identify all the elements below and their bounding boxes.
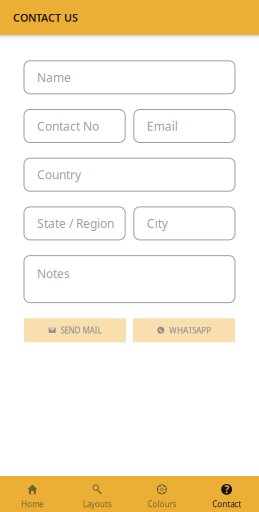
staticText: Home bbox=[21, 499, 44, 509]
staticText: Contact No bbox=[37, 118, 99, 134]
button[interactable]: Colours bbox=[129, 476, 194, 512]
staticText: Name bbox=[37, 69, 71, 85]
staticText: Email bbox=[147, 118, 178, 134]
staticText: City bbox=[147, 215, 168, 231]
staticText: Notes bbox=[37, 266, 70, 281]
staticText: State / Region bbox=[37, 215, 114, 231]
staticText: Contact bbox=[212, 499, 241, 509]
button[interactable]: WHATSAPP bbox=[133, 318, 235, 342]
staticText: Layouts bbox=[83, 499, 112, 509]
staticText: SEND MAIL bbox=[60, 325, 101, 336]
staticText: Country bbox=[37, 167, 81, 183]
staticText: WHATSAPP bbox=[169, 325, 211, 336]
staticText: ? bbox=[224, 482, 229, 496]
button[interactable]: Home bbox=[0, 476, 65, 512]
button[interactable]: SEND MAIL bbox=[24, 318, 126, 342]
button[interactable]: Layouts bbox=[65, 476, 130, 512]
button[interactable]: ? bbox=[194, 476, 259, 512]
staticText: Colours bbox=[147, 499, 176, 509]
staticText: CONTACT US bbox=[13, 10, 78, 25]
